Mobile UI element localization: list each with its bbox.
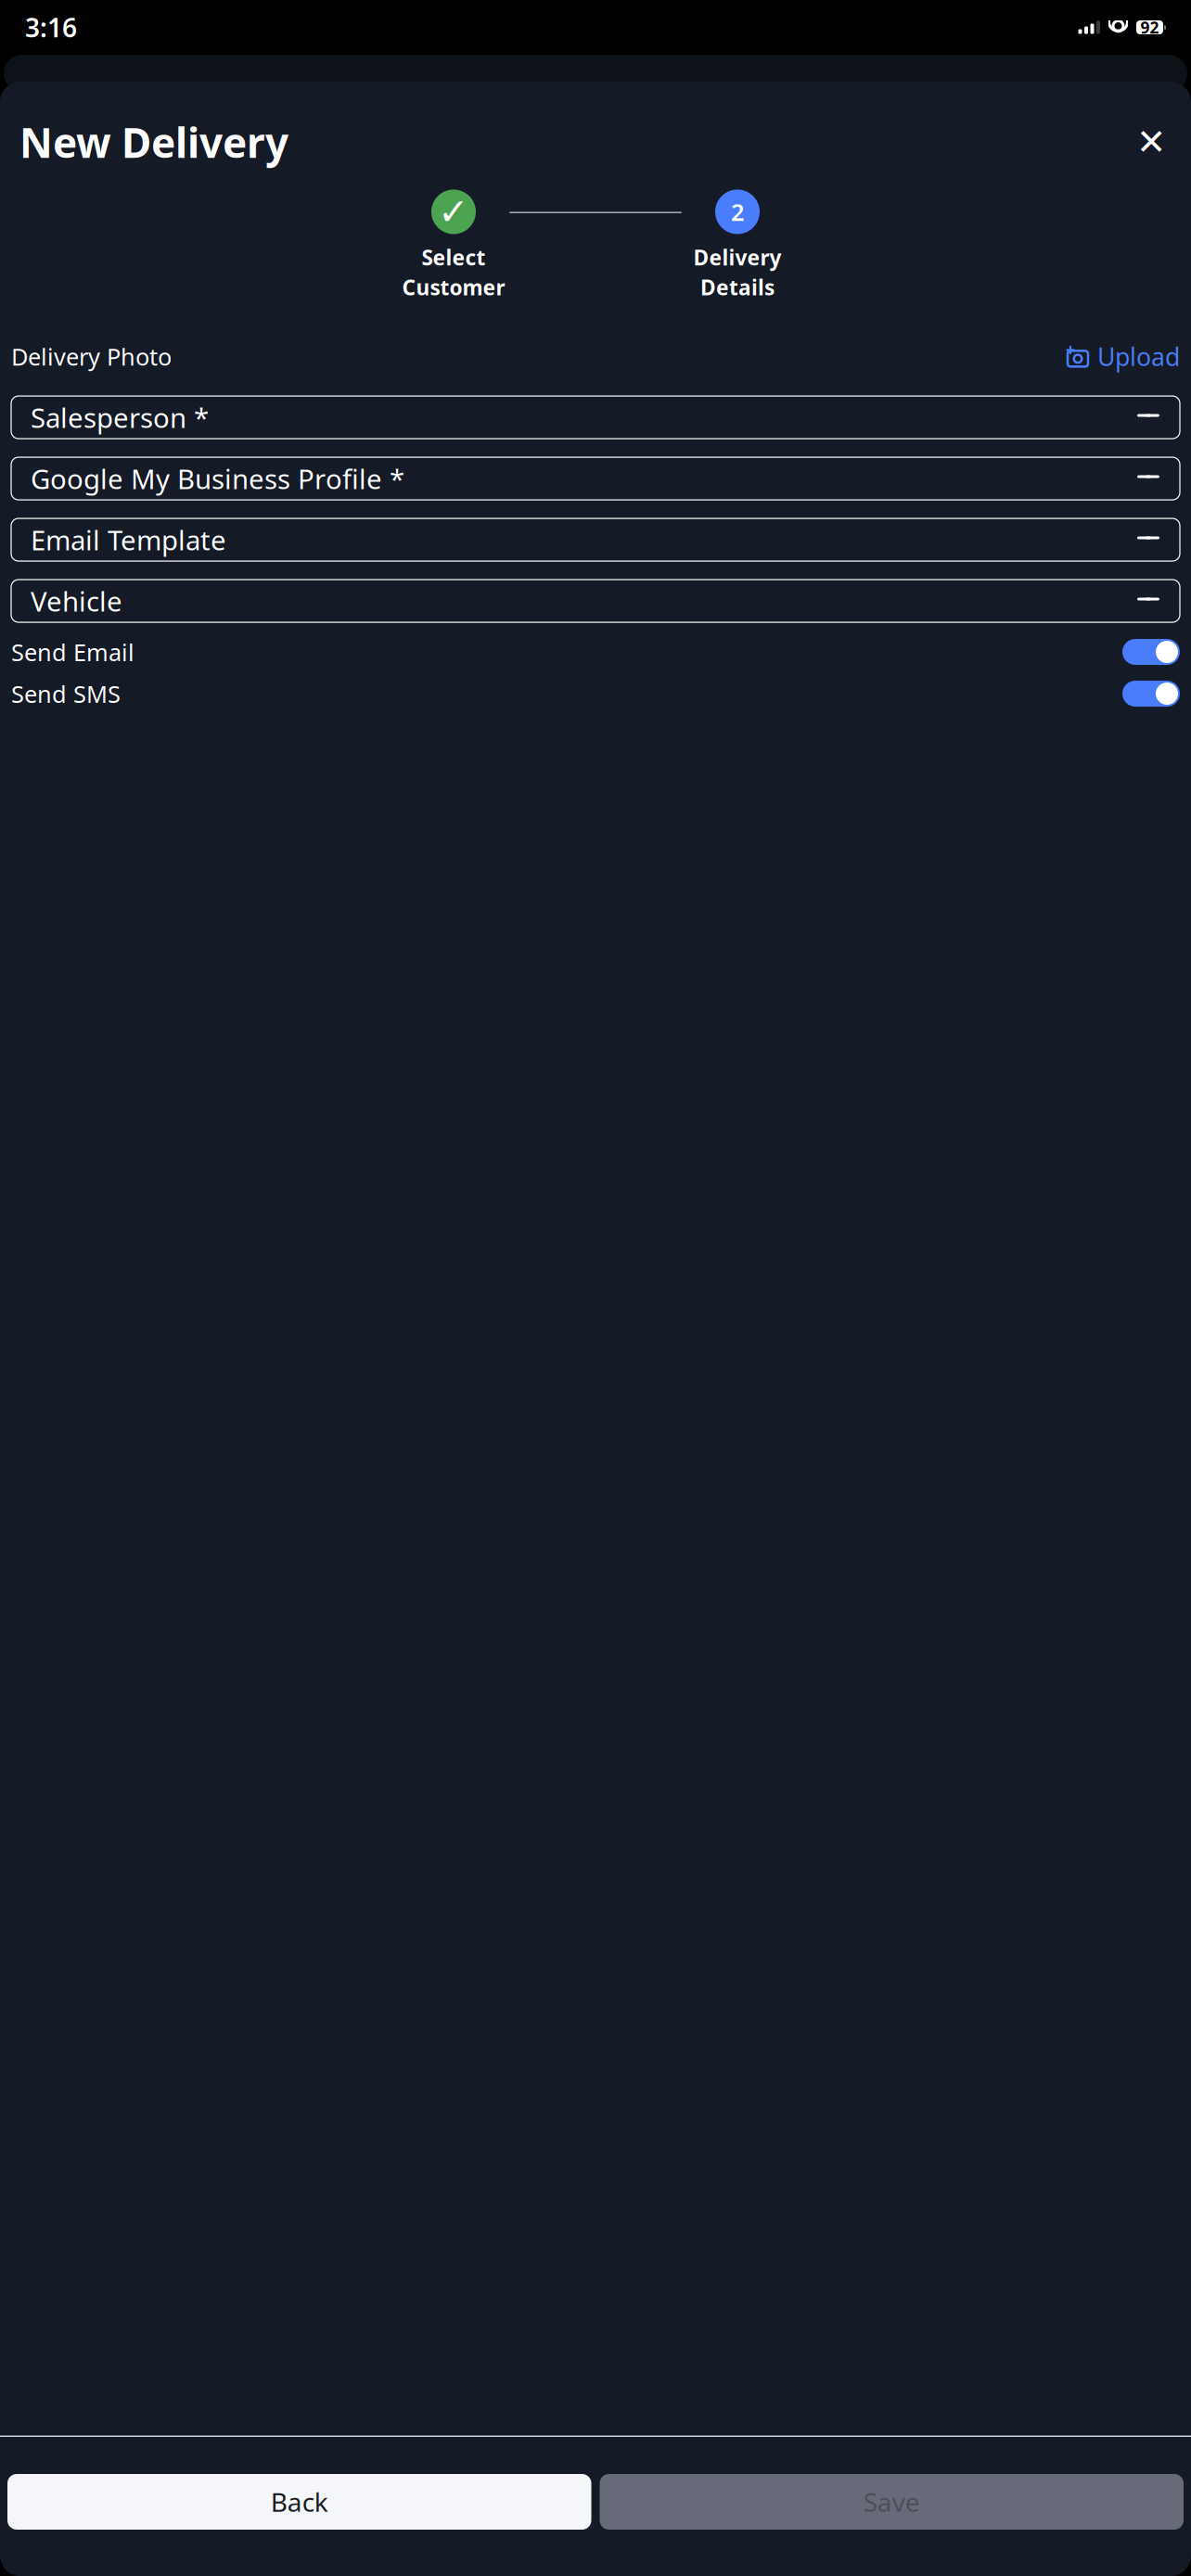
staticText: Google My Business Profile * (31, 460, 404, 497)
staticText: 92 (1140, 17, 1159, 38)
staticText: ✕ (1136, 122, 1166, 162)
button[interactable]: Save (600, 2474, 1184, 2530)
button[interactable]: Salesperson * (11, 396, 1180, 439)
staticText: Select (422, 243, 486, 271)
staticText: Delivery Photo (11, 341, 172, 372)
staticText: Customer (402, 273, 505, 301)
staticText: Send Email (11, 636, 134, 667)
button[interactable]: Send Email (11, 634, 1180, 670)
button[interactable]: Back (7, 2474, 591, 2530)
staticText: Send SMS (11, 678, 121, 709)
button[interactable]: Email Template (11, 518, 1180, 561)
staticText: Delivery (693, 243, 781, 271)
staticText: ✓ (438, 191, 469, 233)
staticText: Vehicle (31, 583, 122, 619)
staticText: Save (863, 2485, 920, 2519)
button[interactable]: Vehicle (11, 580, 1180, 622)
staticText: New Delivery (19, 115, 288, 169)
staticText: 2 (731, 196, 744, 227)
staticText: Upload (1097, 340, 1180, 373)
button[interactable]: Close (1131, 122, 1172, 162)
button[interactable]: Google My Business Profile * (11, 457, 1180, 500)
staticText: Salesperson * (31, 399, 209, 435)
staticText: Details (700, 273, 775, 301)
button[interactable]: Upload (1066, 340, 1180, 373)
staticText: Email Template (31, 522, 226, 558)
staticText: Back (271, 2485, 328, 2519)
button[interactable]: Send SMS (11, 676, 1180, 711)
staticText: 3:16 (25, 10, 77, 45)
